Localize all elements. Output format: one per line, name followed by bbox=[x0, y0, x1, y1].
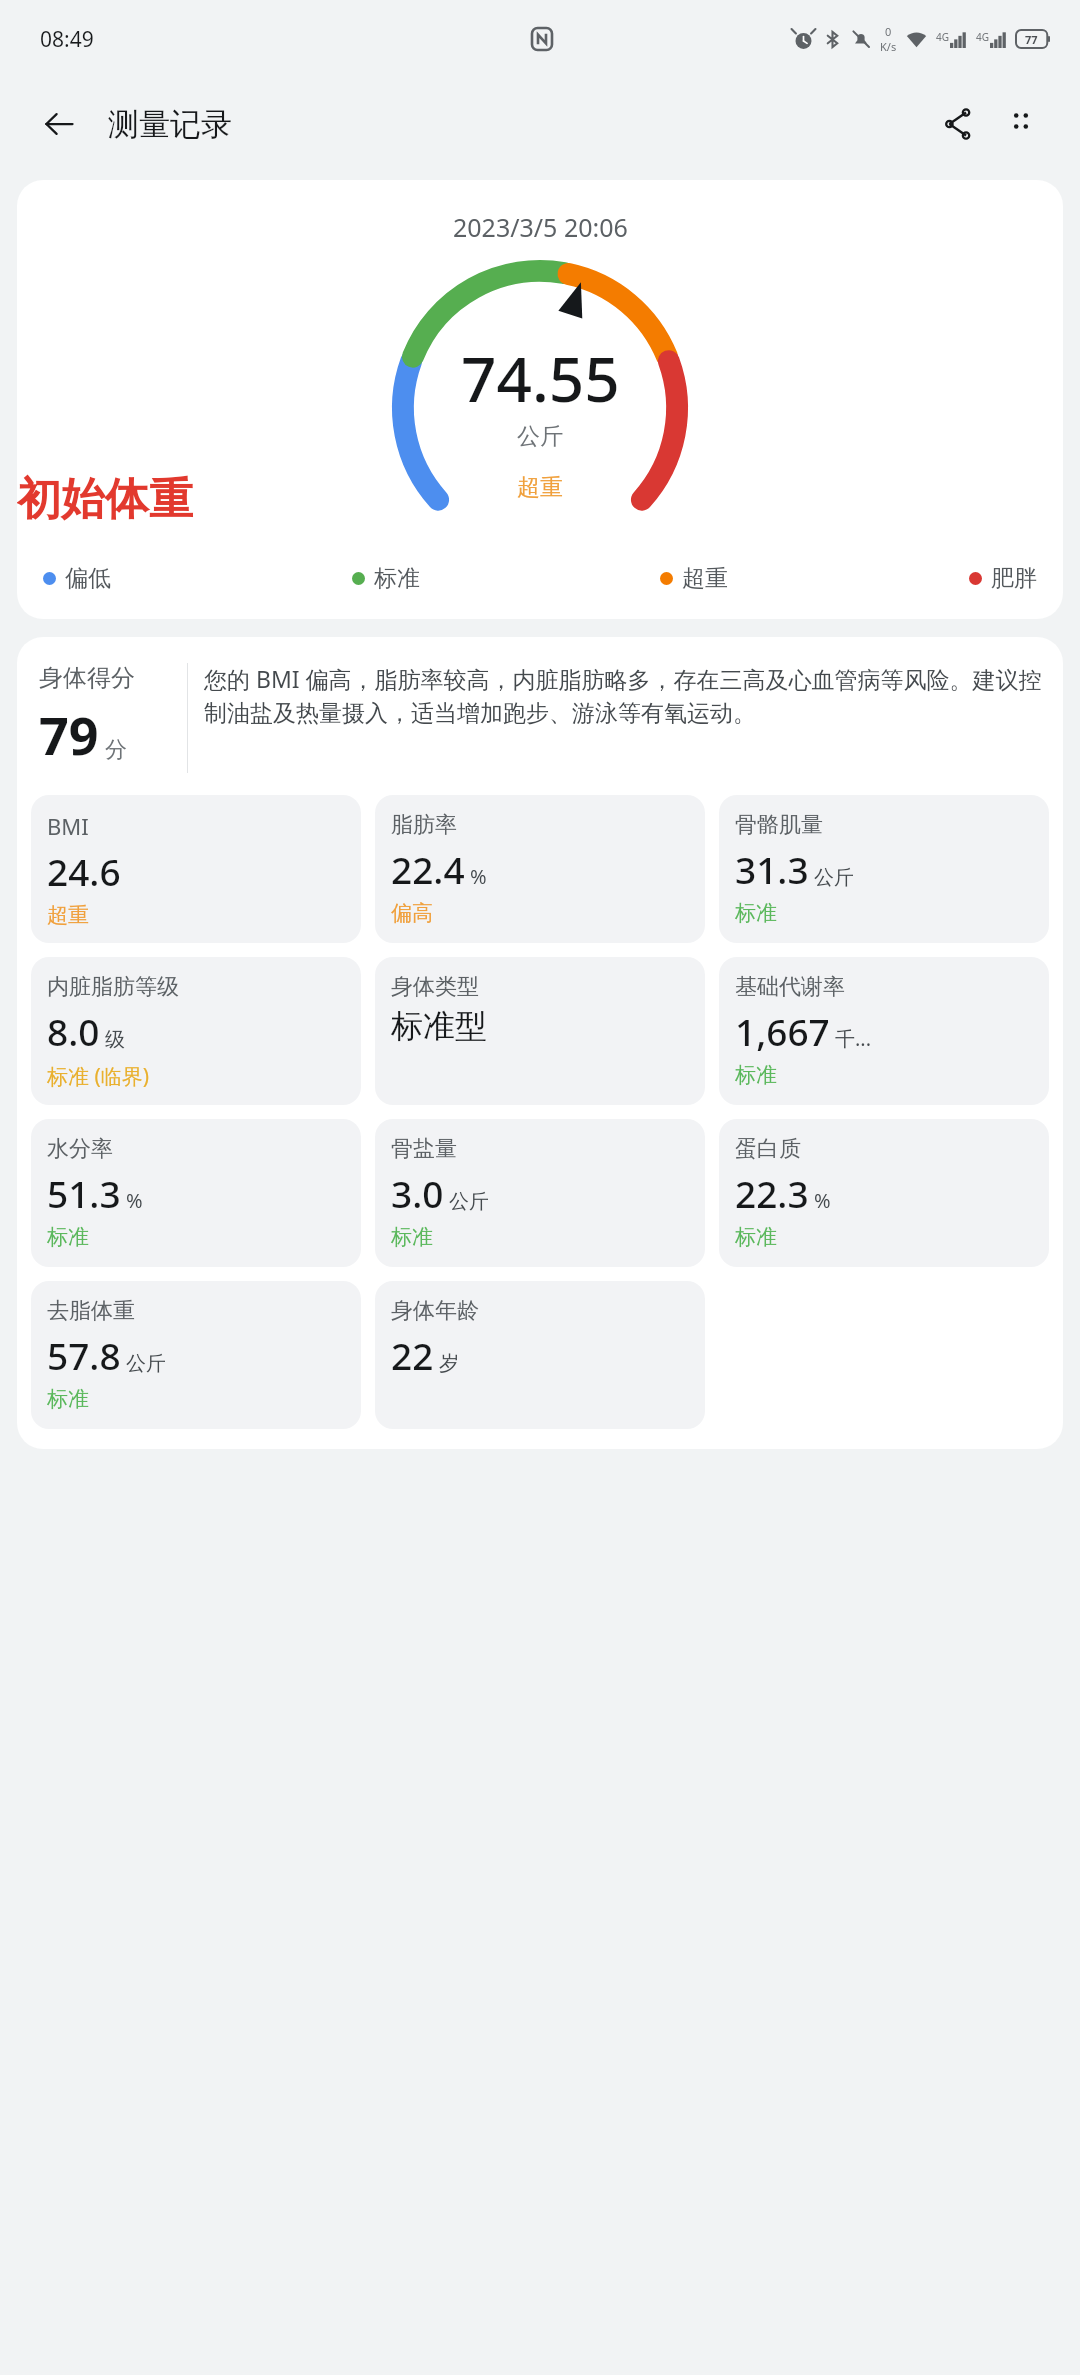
staticText: 基础代谢率 bbox=[735, 973, 845, 1001]
staticText: 4G bbox=[936, 30, 949, 44]
staticText: 0 bbox=[885, 24, 892, 39]
staticText: 22.3 bbox=[735, 1168, 809, 1218]
staticText: 8.0 bbox=[47, 1006, 100, 1056]
staticText: 标准 bbox=[47, 1224, 89, 1250]
staticText: 标准 bbox=[391, 1224, 433, 1250]
staticText: 超重 bbox=[517, 473, 563, 502]
button[interactable]: More options bbox=[990, 93, 1052, 155]
button[interactable]: Back bbox=[30, 95, 88, 153]
staticText: 超重 bbox=[47, 902, 89, 928]
staticText: % bbox=[126, 1187, 143, 1214]
staticText: 水分率 bbox=[47, 1135, 113, 1163]
button[interactable]: 水分率 bbox=[31, 1119, 361, 1267]
button[interactable]: 基础代谢率 bbox=[719, 957, 1049, 1105]
staticText: 肥胖 bbox=[991, 564, 1037, 593]
staticText: 您的 BMI 偏高，脂肪率较高，内脏脂肪略多，存在三高及心血管病等风险。建议控制… bbox=[204, 663, 1049, 728]
staticText: % bbox=[814, 1187, 831, 1214]
staticText: 2023/3/5 20:06 bbox=[453, 210, 628, 244]
staticText: 31.3 bbox=[735, 844, 809, 894]
staticText: 身体得分 bbox=[39, 663, 135, 693]
staticText: 51.3 bbox=[47, 1168, 121, 1218]
staticText: 公斤 bbox=[449, 1189, 489, 1214]
staticText: % bbox=[470, 863, 487, 890]
staticText: 内脏脂肪等级 bbox=[47, 973, 179, 1001]
staticText: 蛋白质 bbox=[735, 1135, 801, 1163]
button[interactable]: 去脂体重 bbox=[31, 1281, 361, 1429]
button[interactable]: 骨盐量 bbox=[375, 1119, 705, 1267]
staticText: 骨盐量 bbox=[391, 1135, 457, 1163]
staticText: 超重 bbox=[682, 564, 728, 593]
staticText: 去脂体重 bbox=[47, 1297, 135, 1325]
button[interactable]: 身体类型 bbox=[375, 957, 705, 1105]
staticText: 79 bbox=[39, 699, 99, 770]
staticText: K/s bbox=[880, 39, 897, 54]
staticText: 脂肪率 bbox=[391, 811, 457, 839]
staticText: 08:49 bbox=[40, 25, 94, 54]
staticText: 标准型 bbox=[391, 1006, 487, 1046]
staticText: 标准 bbox=[374, 564, 420, 593]
staticText: 偏高 bbox=[391, 900, 433, 926]
staticText: 77 bbox=[1025, 32, 1038, 47]
staticText: 测量记录 bbox=[108, 105, 232, 144]
staticText: 公斤 bbox=[126, 1351, 166, 1376]
staticText: 标准 bbox=[47, 1386, 89, 1412]
staticText: 57.8 bbox=[47, 1330, 121, 1380]
button[interactable]: 骨骼肌量 bbox=[719, 795, 1049, 943]
staticText: 千... bbox=[835, 1025, 872, 1052]
staticText: 骨骼肌量 bbox=[735, 811, 823, 839]
staticText: 公斤 bbox=[517, 422, 563, 451]
button[interactable]: BMI bbox=[31, 795, 361, 943]
staticText: 分 bbox=[105, 736, 127, 764]
button[interactable]: 内脏脂肪等级 bbox=[31, 957, 361, 1105]
staticText: 初始体重 bbox=[17, 472, 193, 527]
staticText: 74.55 bbox=[461, 336, 620, 420]
button[interactable]: 蛋白质 bbox=[719, 1119, 1049, 1267]
staticText: 1,667 bbox=[735, 1006, 830, 1056]
staticText: 身体类型 bbox=[391, 973, 479, 1001]
staticText: 标准 bbox=[735, 1062, 777, 1088]
staticText: BMI bbox=[47, 811, 89, 841]
button[interactable]: 身体年龄 bbox=[375, 1281, 705, 1429]
staticText: 偏低 bbox=[65, 564, 111, 593]
staticText: 标准 bbox=[735, 1224, 777, 1250]
staticText: 标准 bbox=[735, 900, 777, 926]
staticText: 级 bbox=[105, 1027, 125, 1052]
staticText: 标准 (临界) bbox=[47, 1062, 150, 1091]
staticText: 22.4 bbox=[391, 844, 465, 894]
button[interactable]: Share bbox=[928, 93, 990, 155]
staticText: 岁 bbox=[439, 1351, 459, 1376]
staticText: 4G bbox=[976, 30, 989, 44]
staticText: 公斤 bbox=[814, 865, 854, 890]
staticText: 24.6 bbox=[47, 846, 121, 896]
button[interactable]: 脂肪率 bbox=[375, 795, 705, 943]
staticText: 22 bbox=[391, 1330, 434, 1380]
staticText: 身体年龄 bbox=[391, 1297, 479, 1325]
staticText: 3.0 bbox=[391, 1168, 444, 1218]
